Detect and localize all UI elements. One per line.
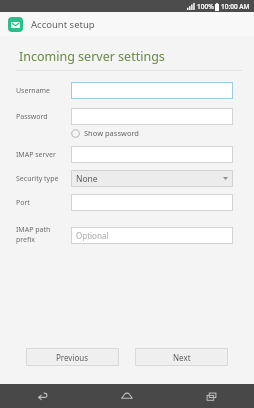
button[interactable]: Back [0,384,84,408]
staticText: IMAP server [16,150,71,160]
staticText: Port [16,198,71,208]
button[interactable] [71,82,233,99]
button[interactable]: Show password [71,128,139,138]
button[interactable] [71,108,233,125]
button[interactable]: Recent apps [169,384,254,408]
button[interactable] [71,146,233,163]
staticText: Optional [76,230,109,241]
button[interactable]: Previous [26,348,119,366]
button[interactable] [71,194,233,211]
staticText: Next [173,352,191,363]
staticText: IMAP path prefix [16,225,71,245]
button[interactable]: Optional [71,227,233,244]
staticText: Security type [16,174,71,184]
staticText: Password [16,112,71,122]
staticText: Previous [56,352,89,363]
staticText: 100% [197,2,214,11]
staticText: Incoming server settings [19,48,165,65]
button[interactable]: Home [84,384,169,408]
staticText: Account setup [31,18,95,31]
staticText: 10:00 AM [221,2,250,11]
button[interactable]: Next [135,348,228,366]
staticText: Username [16,86,71,96]
staticText: None [76,173,98,185]
button[interactable]: None [71,170,233,187]
staticText: Show password [84,128,139,138]
